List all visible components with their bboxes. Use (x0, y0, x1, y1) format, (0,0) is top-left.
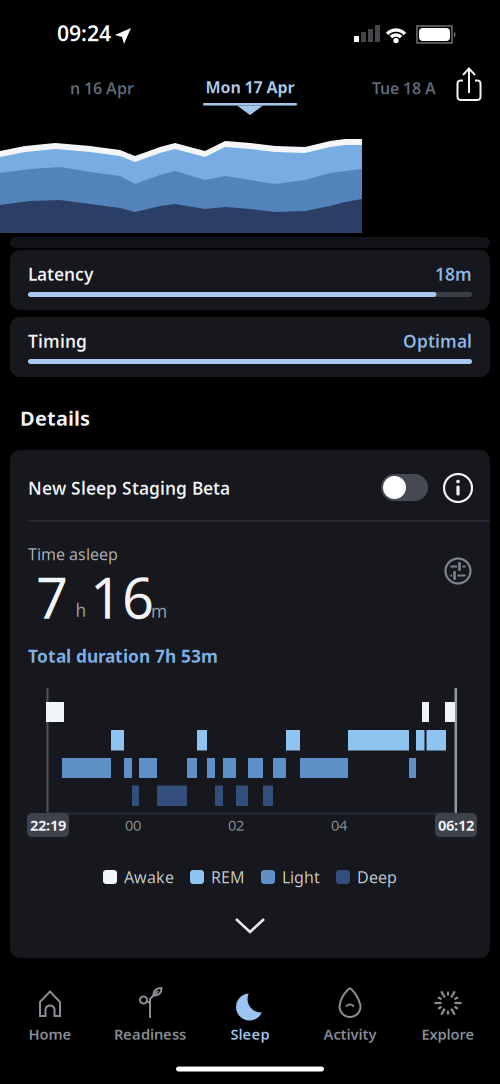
staticText: Mon 17 Apr (205, 76, 294, 98)
staticText: Total duration 7h 53m (28, 644, 218, 667)
staticText: 16 (90, 560, 154, 634)
staticText: Time asleep (28, 543, 118, 565)
staticText: 00 (125, 815, 141, 835)
button[interactable]: Sleep (202, 984, 298, 1048)
button[interactable]: Readiness (102, 984, 198, 1048)
staticText: 22:19 (30, 815, 66, 835)
staticText: Optimal (403, 329, 472, 352)
staticText: Tue 18 A (372, 77, 436, 99)
button[interactable]: Mon 17 Apr (175, 66, 325, 118)
staticText: 09:24 (57, 19, 111, 47)
staticText: n 16 Apr (70, 77, 134, 99)
staticText: Sleep (230, 1024, 269, 1044)
staticText: 06:12 (438, 815, 474, 835)
staticText: 7 (36, 560, 68, 634)
button[interactable]: Activity (302, 984, 398, 1048)
button[interactable]: Home (2, 984, 98, 1048)
staticText: REM (211, 866, 245, 888)
staticText: Explore (421, 1024, 474, 1044)
staticText: Home (28, 1024, 71, 1044)
staticText: New Sleep Staging Beta (28, 476, 230, 499)
staticText: Awake (124, 866, 174, 888)
staticText: 18m (435, 262, 472, 285)
button[interactable] (442, 555, 474, 587)
staticText: h (75, 598, 86, 621)
button[interactable]: Latency (10, 250, 490, 310)
button[interactable] (440, 470, 476, 506)
staticText: Activity (323, 1024, 376, 1044)
button[interactable]: Timing (10, 317, 490, 377)
staticText: Details (20, 405, 90, 431)
button[interactable] (381, 474, 428, 501)
button[interactable] (447, 64, 491, 108)
staticText: m (151, 599, 167, 622)
staticText: Deep (357, 866, 397, 888)
staticText: 02 (228, 815, 244, 835)
staticText: 04 (331, 815, 347, 835)
staticText: Light (282, 866, 320, 888)
button[interactable] (222, 913, 278, 939)
staticText: Timing (28, 329, 87, 352)
button[interactable]: n 16 Apr (70, 77, 160, 99)
staticText: Readiness (114, 1024, 186, 1044)
staticText: Latency (28, 262, 93, 285)
button[interactable]: Tue 18 A (372, 77, 462, 99)
button[interactable]: Explore (400, 984, 496, 1048)
